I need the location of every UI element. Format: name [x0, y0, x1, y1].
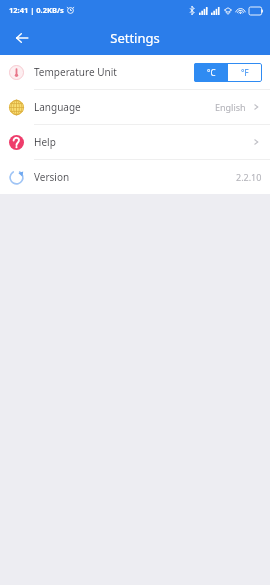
- staticText: Help: [34, 135, 56, 149]
- staticText: 12:41 | 0.2KB/s: [9, 5, 64, 15]
- staticText: English: [215, 101, 246, 113]
- button[interactable]: Version: [0, 160, 270, 194]
- staticText: 2.2.10: [236, 171, 262, 183]
- button[interactable]: °C: [194, 63, 228, 82]
- button[interactable]: Language: [0, 90, 270, 124]
- staticText: Temperature Unit: [34, 65, 117, 79]
- button[interactable]: Back: [8, 24, 36, 52]
- button[interactable]: °F: [228, 63, 262, 82]
- button[interactable]: Help: [0, 125, 270, 159]
- staticText: °F: [241, 67, 249, 78]
- staticText: Settings: [110, 29, 160, 47]
- staticText: °C: [207, 67, 216, 78]
- staticText: Version: [34, 170, 70, 184]
- staticText: Language: [34, 100, 81, 114]
- button[interactable]: Temperature Unit: [0, 55, 270, 89]
